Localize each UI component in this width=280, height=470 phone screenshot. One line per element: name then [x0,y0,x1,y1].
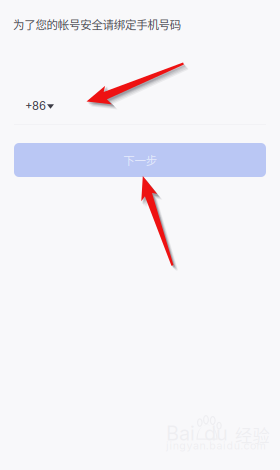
button[interactable]: +86 [25,93,95,119]
staticText: jingyan.baidu.com [166,439,265,452]
button[interactable]: 下一步 [14,143,266,177]
staticText: Bai [166,421,195,445]
staticText: 为了您的帐号安全请绑定手机号码 [13,16,181,33]
staticText: 经验 [235,422,269,447]
staticText: +86 [25,99,46,113]
staticText: 下一步 [123,152,157,168]
staticText: du [204,421,228,445]
